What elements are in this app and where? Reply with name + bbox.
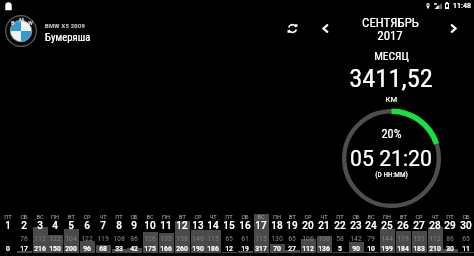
staticText: (D HH:MM) (375, 170, 408, 179)
button[interactable] (332, 210, 348, 253)
staticText: 68 (99, 245, 107, 253)
staticText: 11:48 (453, 2, 471, 10)
staticText: 210 (429, 245, 441, 253)
button[interactable] (253, 210, 269, 253)
staticText: 112 (302, 245, 314, 253)
button[interactable] (348, 210, 364, 253)
staticText: 183 (413, 245, 425, 253)
button[interactable] (63, 210, 79, 253)
staticText: 11 (160, 220, 172, 232)
staticText: ВТ (68, 214, 75, 221)
button[interactable] (316, 210, 332, 253)
staticText: 4 (52, 220, 58, 232)
button[interactable] (427, 210, 443, 253)
button[interactable] (411, 210, 427, 253)
staticText: 65 (225, 235, 233, 243)
staticText: 115 (255, 235, 267, 243)
staticText: 10 (144, 220, 156, 232)
staticText: 12 (176, 220, 188, 232)
button[interactable] (237, 210, 253, 253)
button[interactable] (363, 210, 379, 253)
button[interactable] (142, 210, 158, 253)
button[interactable] (190, 210, 206, 253)
button[interactable] (126, 210, 142, 253)
button[interactable] (47, 210, 63, 253)
staticText: СЕНТЯБРЬ (362, 15, 419, 30)
staticText: BMW X5 2009 (45, 23, 86, 30)
staticText: 17 (255, 220, 267, 232)
staticText: 175 (144, 245, 156, 253)
staticText: ВС (146, 214, 154, 221)
staticText: 5 (68, 220, 74, 232)
staticText: 108 (113, 235, 125, 243)
staticText: ПТ (336, 214, 344, 221)
button[interactable] (158, 210, 174, 253)
staticText: ВТ (289, 214, 296, 221)
staticText: 23 (350, 220, 362, 232)
button[interactable] (205, 210, 221, 253)
button[interactable] (79, 210, 95, 253)
staticText: 144 (381, 235, 393, 243)
button[interactable]: Previous month (313, 16, 337, 40)
button[interactable] (16, 210, 32, 253)
staticText: 28 (429, 220, 441, 232)
button[interactable] (284, 210, 300, 253)
staticText: 122 (81, 235, 93, 243)
staticText: ПН (51, 214, 59, 221)
staticText: ЧТ (99, 214, 107, 221)
staticText: 8 (116, 220, 122, 232)
staticText: ВС (367, 214, 375, 221)
staticText: СР (415, 214, 423, 221)
staticText: 26 (397, 220, 409, 232)
button[interactable] (32, 210, 48, 253)
staticText: 42 (130, 245, 138, 253)
staticText: 86 (130, 235, 138, 243)
staticText: 16 (239, 220, 251, 232)
staticText: 9 (131, 220, 137, 232)
staticText: 122 (49, 235, 61, 243)
button[interactable] (300, 210, 316, 253)
staticText: СР (304, 214, 312, 221)
button[interactable] (442, 210, 458, 253)
staticText: 5 (338, 245, 342, 253)
staticText: 119 (397, 235, 409, 243)
staticText: 17 (20, 245, 28, 253)
button[interactable] (95, 210, 111, 253)
staticText: 14 (207, 220, 219, 232)
button[interactable] (395, 210, 411, 253)
staticText: 216 (34, 245, 46, 253)
staticText: СБ (241, 214, 249, 221)
button[interactable] (111, 210, 127, 253)
staticText: 6 (84, 220, 90, 232)
staticText: 1 (5, 220, 11, 232)
button[interactable] (0, 210, 16, 253)
staticText: 65 (462, 235, 470, 243)
staticText: ВС (257, 214, 265, 221)
button[interactable]: Refresh (278, 14, 306, 42)
button[interactable]: Next month (441, 16, 465, 40)
button[interactable] (379, 210, 395, 253)
staticText: ПТ (446, 214, 454, 221)
button[interactable]: СЕНТЯБРЬ (340, 13, 440, 49)
staticText: 27 (288, 245, 296, 253)
staticText: 317 (255, 245, 267, 253)
staticText: СР (83, 214, 91, 221)
button[interactable]: B (0, 13, 140, 49)
staticText: 90 (352, 245, 360, 253)
button[interactable] (269, 210, 285, 253)
staticText: M (19, 17, 24, 23)
staticText: 76 (20, 235, 28, 243)
staticText: 133 (160, 235, 172, 243)
button[interactable] (174, 210, 190, 253)
staticText: ПН (162, 214, 170, 221)
button[interactable] (221, 210, 237, 253)
staticText: 65 (288, 235, 296, 243)
staticText: 96 (83, 245, 91, 253)
staticText: ПН (273, 214, 281, 221)
staticText: 142 (350, 235, 362, 243)
staticText: ПТ (115, 214, 123, 221)
staticText: 260 (176, 245, 188, 253)
staticText: 119 (97, 235, 109, 243)
button[interactable] (458, 210, 474, 253)
staticText: 13 (192, 220, 204, 232)
